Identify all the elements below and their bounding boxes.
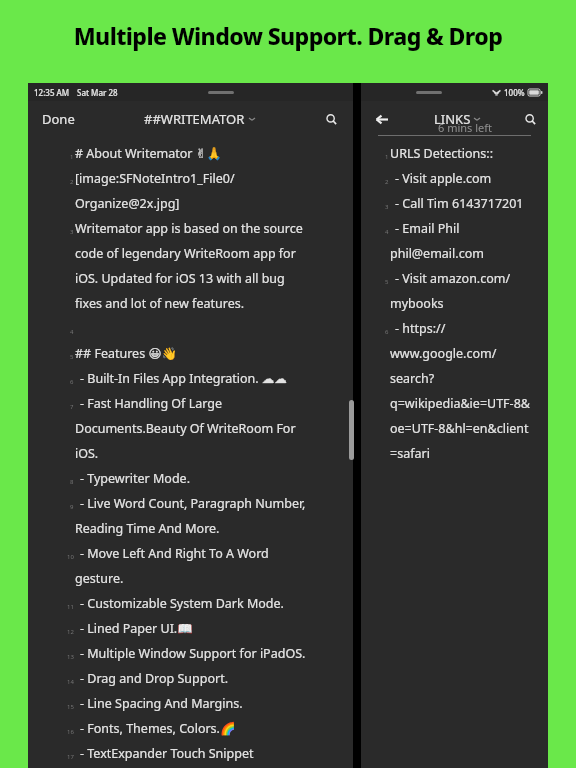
staticText: - Drag and Drop Support. <box>80 670 229 687</box>
button[interactable]: ##WRITEMATOR <box>138 104 261 134</box>
staticText: 5 <box>385 278 389 286</box>
staticText: 12:35 AM <box>34 87 70 98</box>
staticText: 100% <box>504 87 525 98</box>
staticText: Reading Time And More. <box>75 520 220 537</box>
staticText: 12 <box>67 628 74 636</box>
staticText: # About Writemator ✌️🙏 <box>75 145 222 162</box>
staticText: 4 <box>385 228 389 236</box>
staticText: 17 <box>67 753 74 761</box>
staticText: 16 <box>67 728 74 736</box>
staticText: - Visit apple.com <box>395 170 492 187</box>
staticText: [image:SFNoteIntro1_File0/ <box>75 170 235 187</box>
button[interactable]: Search <box>513 108 548 131</box>
staticText: - Live Word Count, Paragraph Number, <box>80 495 306 512</box>
staticText: 2 <box>385 178 389 186</box>
staticText: Done <box>42 110 75 128</box>
staticText: search? <box>390 370 435 387</box>
staticText: gesture. <box>75 570 124 587</box>
staticText: 13 <box>67 653 74 661</box>
staticText: =safari <box>390 445 430 462</box>
staticText: phil@email.com <box>390 245 484 262</box>
staticText: www.google.com/ <box>390 345 497 362</box>
staticText: 5 <box>70 353 74 361</box>
staticText: 6 mins left <box>438 120 492 135</box>
staticText: ## Features 😀👋 <box>75 345 177 362</box>
staticText: 8 <box>70 478 74 486</box>
staticText: - Fast Handling Of Large <box>80 395 222 412</box>
staticText: 11 <box>67 603 74 611</box>
staticText: - Fonts, Themes, Colors.🌈 <box>80 720 236 737</box>
staticText: - Customizable System Dark Mode. <box>80 595 284 612</box>
staticText: 10 <box>67 553 74 561</box>
staticText: 14 <box>67 678 74 686</box>
staticText: - Visit amazon.com/ <box>395 270 511 287</box>
staticText: Multiple Window Support. Drag & Drop <box>0 20 576 51</box>
staticText: mybooks <box>390 295 444 312</box>
staticText: 15 <box>67 703 74 711</box>
staticText: - https:// <box>395 320 446 337</box>
staticText: oe=UTF-8&hl=en&client <box>390 420 529 437</box>
staticText: 2 <box>70 178 74 186</box>
staticText: Sat Mar 28 <box>77 87 118 98</box>
staticText: - Built-In Files App Integration. ☁️☁️ <box>80 370 287 387</box>
staticText: 1 <box>70 153 74 161</box>
staticText: code of legendary WriteRoom app for <box>75 245 296 262</box>
staticText: - Email Phil <box>395 220 460 237</box>
button[interactable]: LINKS <box>430 104 484 134</box>
staticText: LINKS <box>434 110 471 128</box>
button[interactable]: Done <box>28 104 89 134</box>
staticText: 3 <box>70 228 74 236</box>
staticText: q=wikipedia&ie=UTF-8& <box>390 395 530 412</box>
staticText: - Call Tim 6143717201 <box>395 195 524 212</box>
staticText: Writemator app is based on the source <box>75 220 303 237</box>
staticText: 6 <box>385 328 389 336</box>
staticText: 6 <box>70 378 74 386</box>
staticText: ##WRITEMATOR <box>144 110 245 128</box>
staticText: - Multiple Window Support for iPadOS. <box>80 645 306 662</box>
staticText: - Typewriter Mode. <box>80 470 191 487</box>
button[interactable]: Back <box>361 105 402 134</box>
staticText: URLS Detections:: <box>390 145 494 162</box>
staticText: 9 <box>70 503 74 511</box>
staticText: fixes and lot of new features. <box>75 295 245 312</box>
staticText: 1 <box>385 153 389 161</box>
staticText: Organize@2x.jpg] <box>75 195 180 212</box>
staticText: 4 <box>70 328 74 336</box>
staticText: iOS. <box>75 445 99 462</box>
staticText: - Line Spacing And Margins. <box>80 695 243 712</box>
staticText: - Move Left And Right To A Word <box>80 545 269 562</box>
staticText: iOS. Updated for iOS 13 with all bug <box>75 270 285 287</box>
staticText: - Lined Paper UI.📖 <box>80 620 193 637</box>
staticText: Documents.Beauty Of WriteRoom For <box>75 420 296 437</box>
button[interactable]: Search <box>310 108 353 131</box>
staticText: 3 <box>385 203 389 211</box>
staticText: - TextExpander Touch Snippet <box>80 745 254 762</box>
staticText: 7 <box>70 403 74 411</box>
